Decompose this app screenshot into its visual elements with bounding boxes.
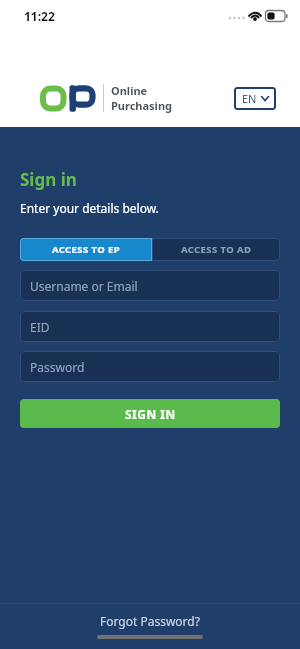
button[interactable]: ACCESS TO AD (152, 238, 280, 261)
staticText: Password (30, 359, 85, 375)
staticText: ACCESS TO AD (181, 243, 252, 256)
button[interactable]: Password (20, 351, 280, 382)
staticText: Purchasing (111, 98, 173, 113)
staticText: Username or Email (30, 278, 138, 294)
button[interactable]: ACCESS TO EP (20, 238, 152, 261)
staticText: Online (111, 83, 148, 98)
staticText: EN (242, 91, 257, 106)
button[interactable]: Username or Email (20, 270, 280, 301)
staticText: EID (30, 319, 50, 335)
staticText: SIGN IN (125, 406, 176, 422)
button[interactable]: SIGN IN (20, 399, 280, 428)
button[interactable]: Forgot Password? (100, 613, 200, 629)
staticText: Forgot Password? (100, 613, 200, 629)
button[interactable]: EN (234, 87, 276, 110)
staticText: ACCESS TO EP (52, 243, 120, 256)
staticText: Sign in (20, 168, 77, 191)
staticText: 11:22 (24, 8, 55, 24)
staticText: Enter your details below. (20, 200, 159, 216)
button[interactable]: EID (20, 311, 280, 342)
